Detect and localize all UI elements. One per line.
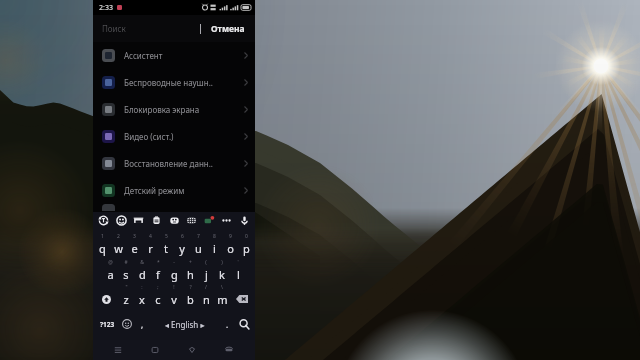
button[interactable]: i — [206, 240, 222, 256]
button[interactable]: Ассистент — [93, 42, 255, 69]
button[interactable]: , — [138, 316, 147, 333]
staticText: & — [140, 259, 144, 266]
button[interactable]: Voice input — [239, 215, 250, 226]
staticText: ◂ English ▸ — [165, 319, 205, 330]
staticText: x — [139, 292, 145, 307]
staticText: m — [217, 292, 228, 307]
button[interactable]: Backspace — [230, 291, 253, 307]
button[interactable]: Блокировка экрана — [93, 96, 255, 123]
staticText: z — [123, 292, 129, 307]
button[interactable]: Home — [147, 342, 163, 358]
staticText: j — [205, 267, 208, 282]
button[interactable]: ?123 — [97, 317, 118, 332]
button[interactable]: Translate — [98, 215, 109, 226]
button[interactable]: Видео (сист.) — [93, 123, 255, 150]
button[interactable]: r — [142, 240, 158, 256]
button[interactable]: y — [174, 240, 190, 256]
staticText: 1 — [101, 233, 104, 240]
staticText: 7 — [197, 233, 200, 240]
staticText: c — [155, 292, 161, 307]
button[interactable]: t — [158, 240, 174, 256]
staticText: g — [171, 267, 178, 282]
button[interactable]: l — [230, 266, 246, 282]
button[interactable]: v — [166, 291, 182, 307]
staticText: ' — [237, 259, 239, 266]
staticText: Видео (сист.) — [124, 131, 174, 142]
staticText: ? — [189, 284, 192, 291]
staticText: / — [205, 284, 207, 291]
staticText: @ — [108, 259, 113, 266]
staticText: Блокировка экрана — [124, 104, 200, 115]
button[interactable]: q — [94, 240, 110, 256]
button[interactable]: x — [134, 291, 150, 307]
staticText: 6 — [181, 233, 184, 240]
button[interactable]: GIF — [133, 215, 144, 226]
button[interactable]: b — [182, 291, 198, 307]
button[interactable]: Keyboard — [186, 215, 197, 226]
button[interactable]: Отмена — [209, 20, 247, 38]
button[interactable]: Детский режим — [93, 177, 255, 204]
button[interactable]: a — [102, 266, 118, 282]
staticText: Детский режим — [124, 185, 185, 196]
button[interactable]: Stickers — [169, 215, 180, 226]
button[interactable]: . — [223, 316, 232, 333]
button[interactable]: p — [238, 240, 254, 256]
button[interactable]: h — [182, 266, 198, 282]
button[interactable]: More options — [221, 215, 232, 226]
staticText: 8 — [213, 233, 216, 240]
staticText: 2 — [117, 233, 120, 240]
staticText: - — [173, 259, 175, 266]
staticText: r — [148, 241, 153, 256]
staticText: \ — [221, 284, 223, 291]
button[interactable]: Emoji — [122, 319, 132, 329]
staticText: u — [195, 241, 202, 256]
button[interactable]: n — [198, 291, 214, 307]
button[interactable]: Wallet — [221, 342, 237, 358]
button[interactable]: Clipboard — [151, 215, 162, 226]
button[interactable]: Attach — [204, 215, 215, 226]
button[interactable]: Восстановление данн.. — [93, 150, 255, 177]
button[interactable]: j — [198, 266, 214, 282]
button[interactable]: m — [214, 291, 230, 307]
button[interactable]: o — [222, 240, 238, 256]
staticText: e — [131, 241, 138, 256]
staticText: ! — [173, 284, 175, 291]
button[interactable]: u — [190, 240, 206, 256]
staticText: Ассистент — [124, 50, 163, 61]
button[interactable]: e — [126, 240, 142, 256]
staticText: 5 — [165, 233, 168, 240]
button[interactable]: Shift — [95, 291, 118, 307]
button[interactable]: Recents — [110, 342, 126, 358]
staticText: 9 — [229, 233, 232, 240]
staticText: , — [141, 319, 144, 330]
button[interactable]: d — [134, 266, 150, 282]
staticText: Беспроводные наушн.. — [124, 77, 213, 88]
button[interactable]: k — [214, 266, 230, 282]
button[interactable]: w — [110, 240, 126, 256]
staticText: k — [219, 267, 225, 282]
button[interactable]: g — [166, 266, 182, 282]
staticText: . — [226, 319, 229, 330]
button[interactable]: Search — [238, 318, 251, 331]
staticText: l — [237, 267, 240, 282]
button[interactable]: Emoji — [116, 215, 127, 226]
staticText: q — [99, 241, 106, 256]
button[interactable]: z — [118, 291, 134, 307]
staticText: 0 — [245, 233, 248, 240]
staticText: v — [171, 292, 177, 307]
button[interactable]: c — [150, 291, 166, 307]
staticText: s — [123, 267, 129, 282]
button[interactable]: Беспроводные наушн.. — [93, 69, 255, 96]
button[interactable]: Favourites — [184, 342, 200, 358]
staticText: i — [213, 241, 216, 256]
staticText: : — [141, 284, 143, 291]
staticText: n — [203, 292, 210, 307]
staticText: a — [107, 267, 114, 282]
button[interactable] — [93, 204, 255, 212]
button[interactable]: s — [118, 266, 134, 282]
button[interactable]: f — [150, 266, 166, 282]
button[interactable]: ◂ English ▸ — [161, 316, 209, 333]
staticText: d — [139, 267, 146, 282]
staticText: ( — [205, 259, 207, 266]
staticText: f — [156, 267, 160, 282]
